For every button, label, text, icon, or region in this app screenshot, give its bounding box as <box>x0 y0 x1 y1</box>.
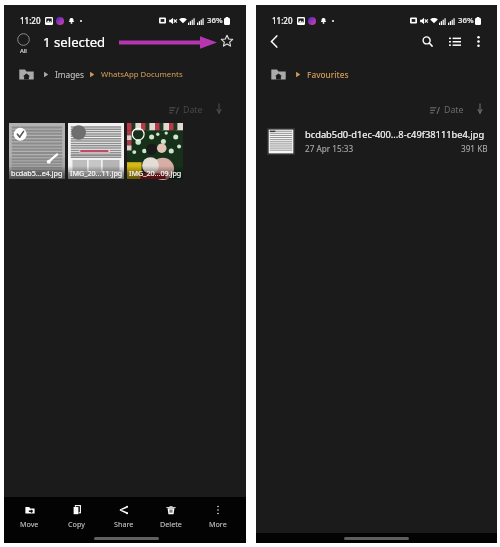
staticText: 11:20 <box>272 15 293 26</box>
staticText: bcdab5d0-d1ec-400...8-c49f38111be4.jpg <box>305 128 485 141</box>
button[interactable]: IMG_20...11.jpg <box>68 123 124 179</box>
staticText: bcdab5...e4.jpg <box>11 168 63 178</box>
button[interactable]: Favourites <box>271 68 349 80</box>
staticText: 1 selected <box>43 33 106 51</box>
staticText: Images <box>55 69 84 80</box>
button[interactable]: More <box>194 504 241 530</box>
button[interactable]: bcdab5d0-d1ec-400...8-c49f38111be4.jpg <box>256 123 497 159</box>
staticText: 11:20 <box>20 15 41 26</box>
button[interactable]: bcdab5...e4.jpg <box>9 123 65 179</box>
staticText: All <box>20 47 27 55</box>
button[interactable]: Search <box>416 30 438 52</box>
button[interactable]: Copy <box>53 504 100 530</box>
staticText: 36% <box>207 15 223 26</box>
button[interactable]: More options <box>467 30 489 52</box>
button[interactable]: Sort direction <box>212 101 226 115</box>
staticText: Move <box>20 519 39 529</box>
staticText: 27 Apr 15:33 <box>305 143 354 154</box>
staticText: IMG_20...11.jpg <box>70 168 123 178</box>
staticText: Date <box>183 104 203 116</box>
button[interactable]: Date <box>167 102 205 118</box>
button[interactable]: Back <box>263 30 285 52</box>
staticText: Favourites <box>307 69 349 80</box>
button[interactable]: Date <box>428 102 466 118</box>
staticText: Share <box>114 519 134 529</box>
staticText: 391 KB <box>461 143 488 154</box>
button[interactable]: Images <box>19 68 183 80</box>
staticText: WhatsApp Documents <box>101 69 183 80</box>
button[interactable]: All <box>17 33 30 55</box>
staticText: More <box>209 519 227 529</box>
button[interactable]: Delete <box>147 504 194 530</box>
staticText: Date <box>444 104 464 116</box>
staticText: IMG_20...09.jpg <box>129 168 182 178</box>
button[interactable]: Sort direction <box>473 101 487 115</box>
button[interactable]: Add to favourites <box>216 30 238 52</box>
button[interactable]: Share <box>100 504 147 530</box>
staticText: 36% <box>458 15 474 26</box>
staticText: Copy <box>68 519 85 529</box>
button[interactable]: List view <box>444 30 466 52</box>
button[interactable]: Move <box>6 504 53 530</box>
button[interactable]: IMG_20...09.jpg <box>127 123 183 179</box>
staticText: Delete <box>160 519 182 529</box>
